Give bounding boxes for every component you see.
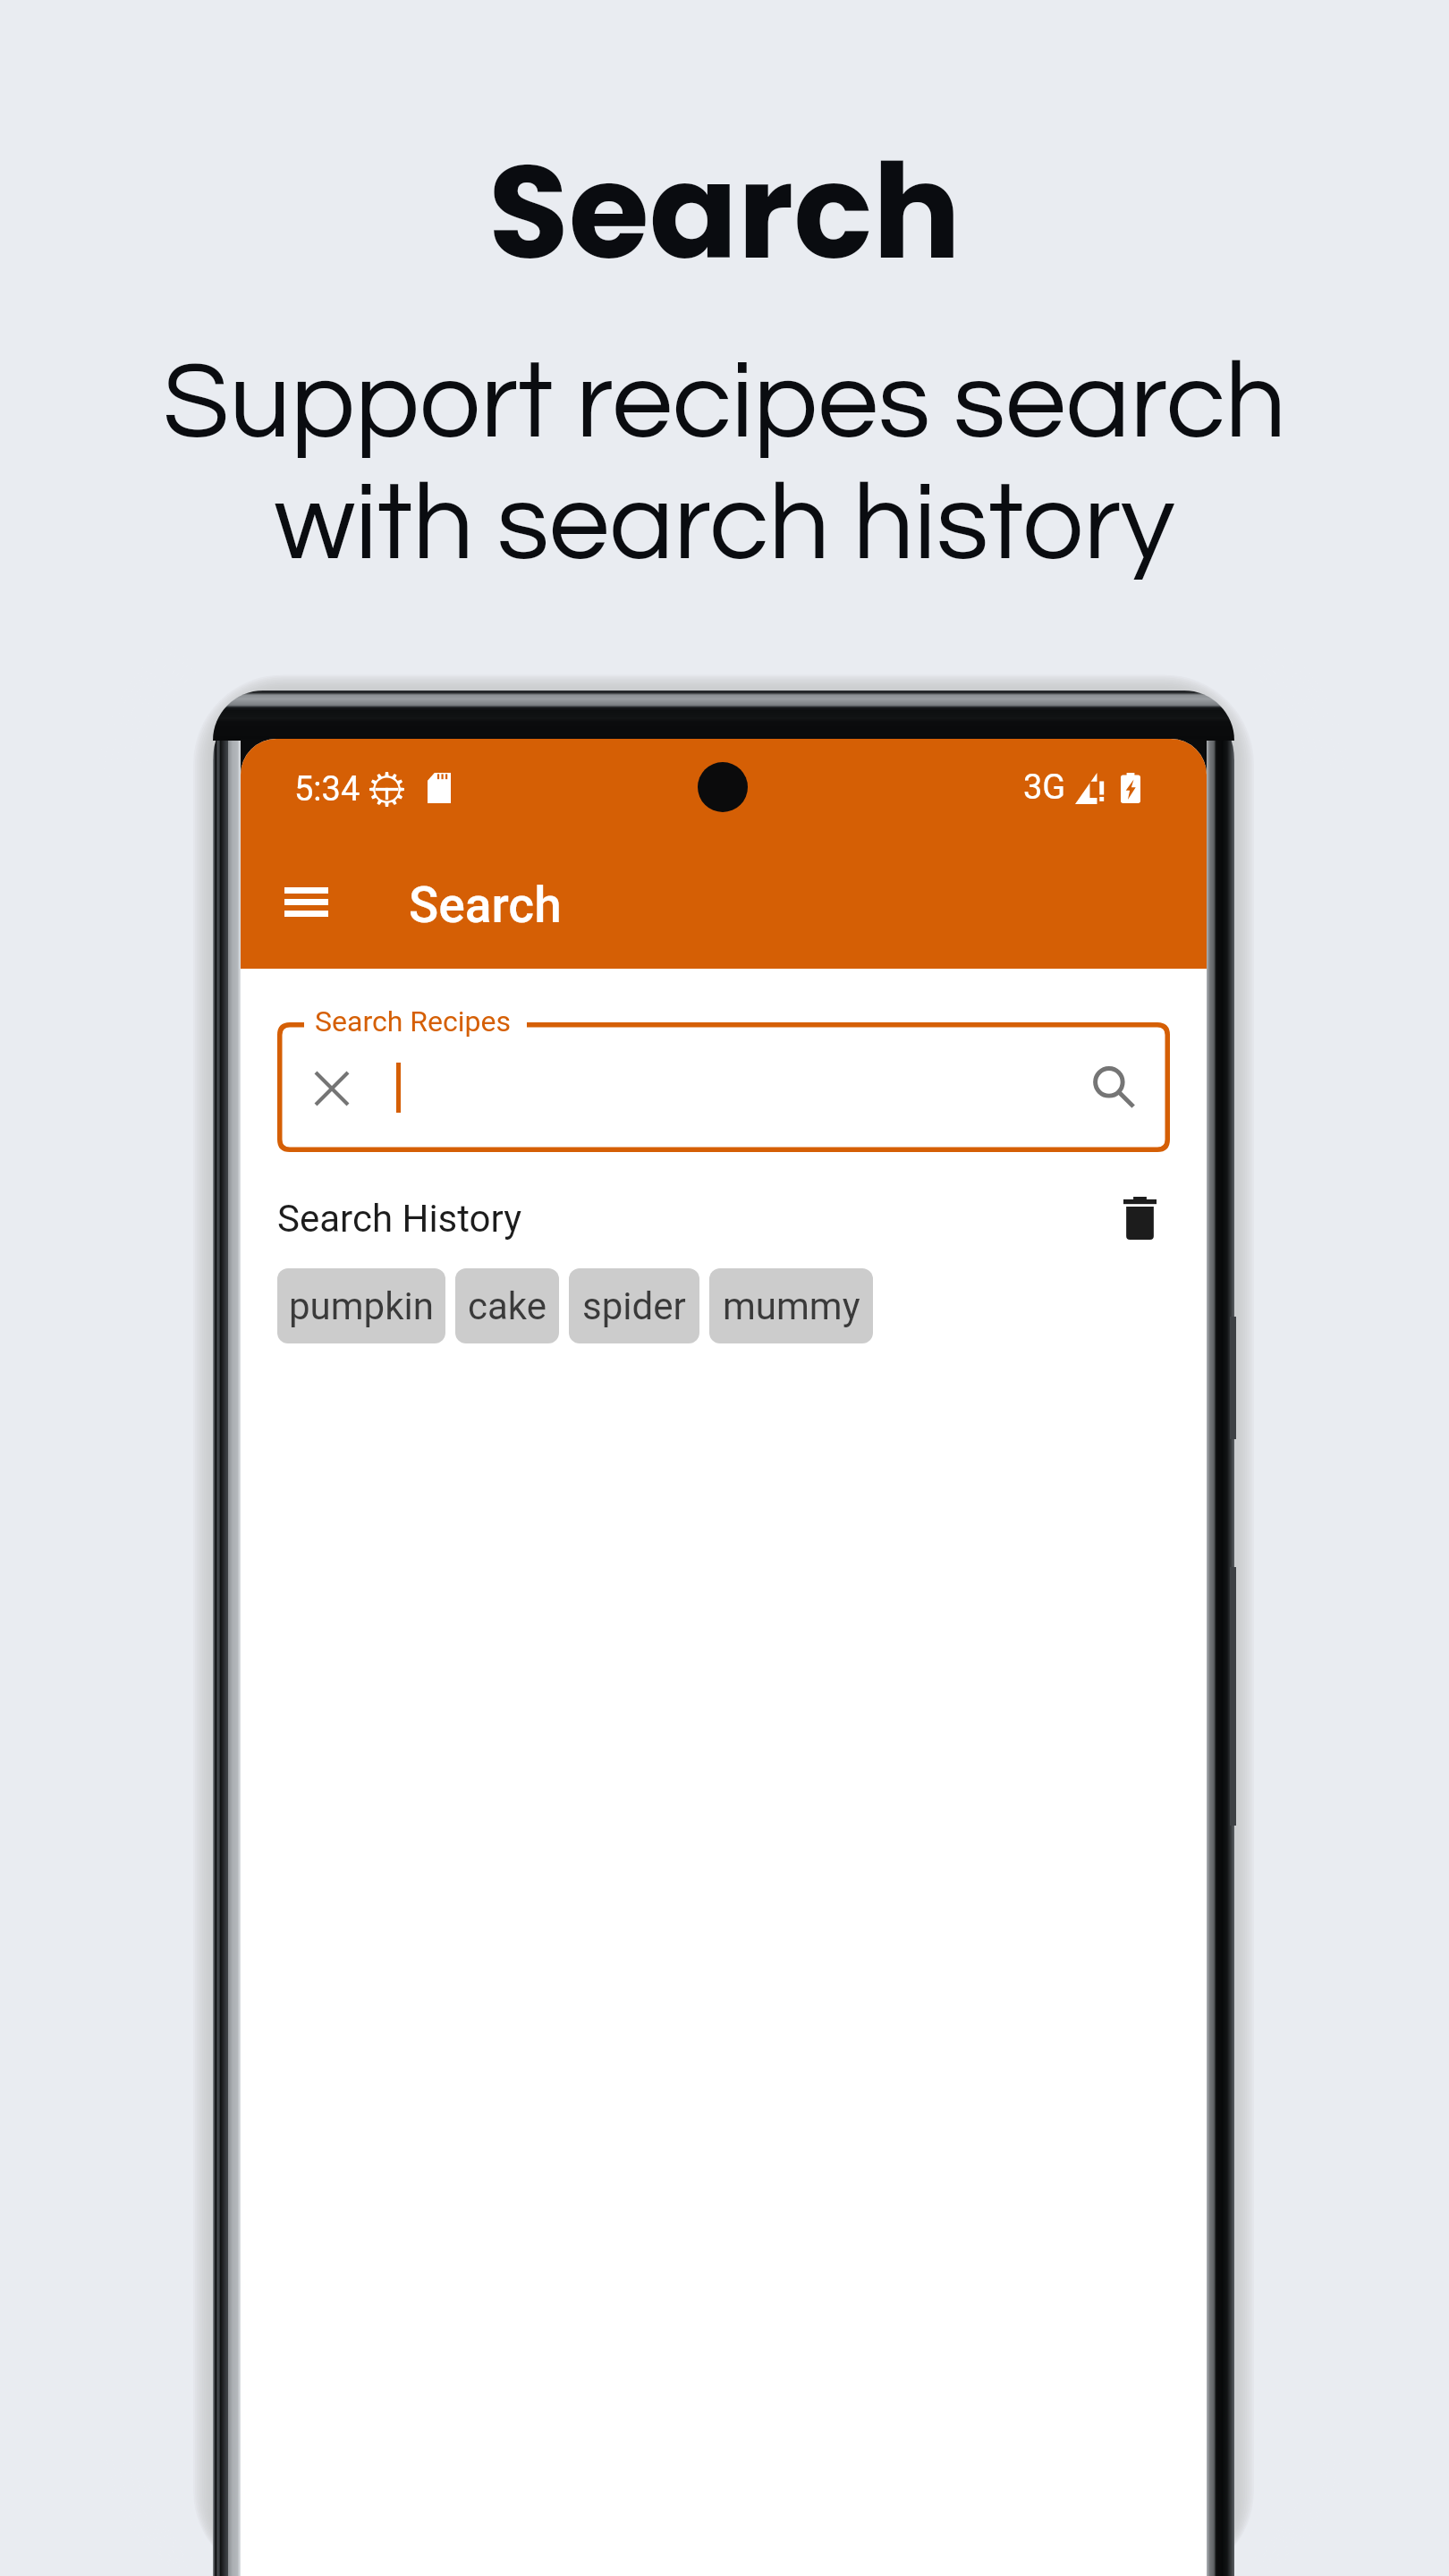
button[interactable]: pumpkin: [277, 1268, 445, 1343]
button[interactable]: spider: [569, 1268, 699, 1343]
staticText: Search Recipes: [315, 1004, 511, 1038]
staticText: 3G: [1023, 767, 1066, 808]
staticText: mummy: [723, 1284, 860, 1328]
staticText: 5:34: [294, 769, 360, 809]
staticText: Search: [0, 121, 1449, 303]
button[interactable]: mummy: [709, 1268, 873, 1343]
button[interactable]: Clear search history: [1105, 1183, 1174, 1253]
staticText: Search: [409, 877, 562, 934]
staticText: spider: [582, 1284, 686, 1328]
staticText: Support recipes search with search histo…: [0, 348, 1449, 581]
button[interactable]: Search: [1066, 1039, 1134, 1107]
staticText: pumpkin: [289, 1284, 434, 1328]
button[interactable]: Clear text: [300, 1040, 364, 1105]
button[interactable]: cake: [455, 1268, 559, 1343]
button[interactable]: Open navigation menu: [244, 848, 325, 928]
staticText: Search History: [277, 1197, 522, 1241]
staticText: cake: [468, 1284, 547, 1328]
